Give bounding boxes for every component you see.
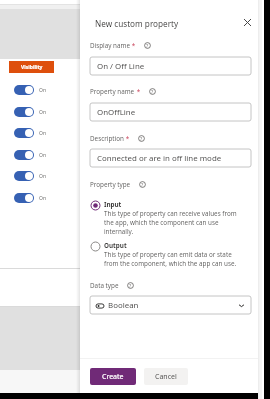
- staticText: On / Off Line: [97, 61, 145, 72]
- staticText: Property type: [90, 180, 131, 189]
- staticText: *: [130, 41, 136, 50]
- button[interactable]: Connected or are in off line mode: [90, 149, 251, 167]
- staticText: Create: [102, 372, 124, 382]
- staticText: On: [39, 152, 46, 159]
- button[interactable]: Help: [148, 87, 157, 96]
- staticText: On: [39, 195, 46, 202]
- staticText: Boolean: [108, 300, 139, 311]
- button[interactable]: Help: [137, 134, 146, 143]
- button[interactable]: On / Off Line: [90, 57, 251, 75]
- button[interactable]: On: [14, 128, 46, 138]
- staticText: *: [135, 87, 141, 96]
- button[interactable]: Help: [143, 41, 152, 50]
- staticText: the app, which the component can use: [104, 218, 219, 227]
- button[interactable]: Help: [138, 180, 147, 189]
- button[interactable]: On: [14, 150, 46, 160]
- staticText: On: [39, 109, 46, 116]
- staticText: ?: [146, 42, 149, 49]
- staticText: ?: [151, 88, 154, 95]
- staticText: Input: [104, 200, 122, 209]
- staticText: ?: [140, 135, 143, 142]
- staticText: Display name: [90, 41, 130, 50]
- button[interactable]: Boolean: [90, 296, 251, 314]
- staticText: On: [39, 173, 46, 180]
- button[interactable]: Visibility: [9, 61, 54, 73]
- staticText: Property name: [90, 87, 135, 96]
- staticText: New custom property: [95, 18, 179, 29]
- button[interactable]: Cancel: [144, 368, 188, 385]
- button[interactable]: On: [14, 85, 46, 95]
- button[interactable]: Create: [90, 368, 136, 385]
- staticText: ?: [141, 181, 144, 188]
- staticText: Cancel: [155, 372, 177, 382]
- button[interactable]: On: [14, 193, 46, 203]
- staticText: This type of property can receive values…: [104, 209, 237, 218]
- staticText: This type of property can emit data or s…: [104, 250, 232, 259]
- staticText: OnOffLine: [97, 107, 136, 118]
- staticText: Data type: [90, 281, 119, 290]
- staticText: *: [124, 134, 130, 143]
- staticText: from the component, which the app can us…: [104, 259, 237, 268]
- button[interactable]: On: [14, 107, 46, 117]
- staticText: internally.: [104, 227, 134, 236]
- button[interactable]: OnOffLine: [90, 103, 251, 121]
- staticText: Description: [90, 134, 124, 143]
- button[interactable]: Help: [126, 281, 135, 290]
- button[interactable]: Output: [90, 241, 252, 268]
- staticText: On: [39, 87, 46, 94]
- staticText: On: [39, 130, 46, 137]
- staticText: Connected or are in off line mode: [97, 153, 222, 164]
- staticText: ?: [129, 282, 132, 289]
- button[interactable]: Close: [239, 14, 255, 30]
- staticText: Output: [104, 241, 127, 250]
- button[interactable]: Input: [90, 200, 252, 236]
- staticText: Visibility: [21, 64, 43, 71]
- button[interactable]: On: [14, 171, 46, 181]
